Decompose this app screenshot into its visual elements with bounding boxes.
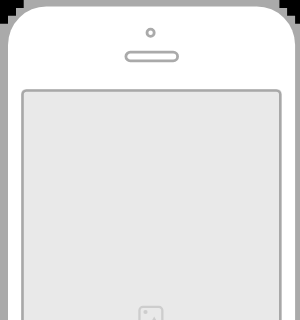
- button[interactable]: Phone device mockup with empty screen: [0, 0, 300, 320]
